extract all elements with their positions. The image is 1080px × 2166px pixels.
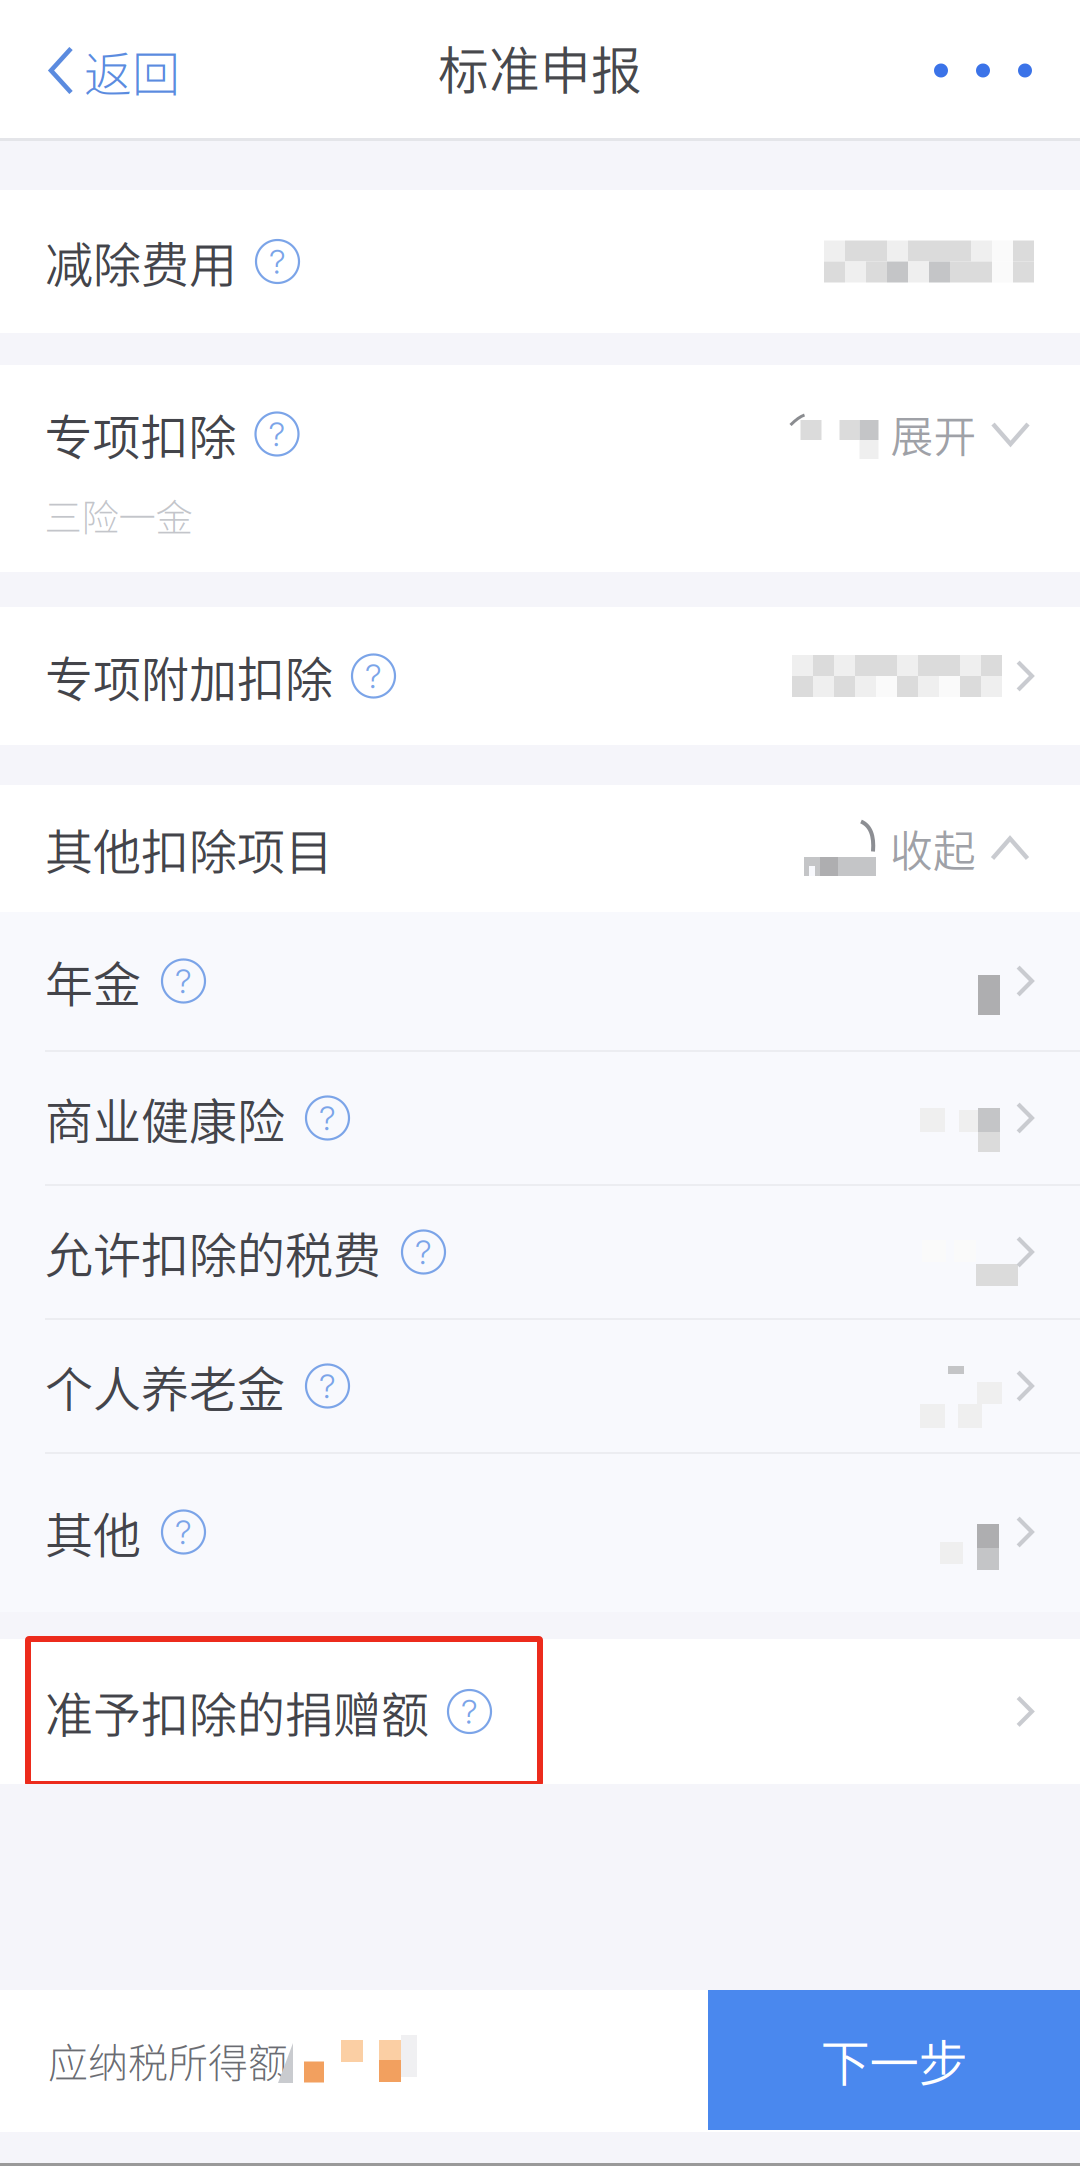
- staticText: 专项附加扣除: [45, 641, 333, 711]
- staticText: 准予扣除的捐赠额: [45, 1677, 429, 1746]
- staticText: 下一步: [820, 2024, 967, 2096]
- staticText: 返回: [84, 36, 180, 105]
- staticText: ?: [415, 1232, 432, 1272]
- staticText: ?: [319, 1098, 336, 1138]
- button[interactable]: 允许扣除的税费: [0, 1186, 1080, 1320]
- staticText: 其他: [45, 1497, 141, 1567]
- staticText: ?: [269, 241, 286, 282]
- button[interactable]: 其他扣除项目: [0, 785, 1080, 912]
- button[interactable]: 下一步: [708, 1990, 1080, 2130]
- staticText: 三险一金: [44, 488, 192, 543]
- button[interactable]: 商业健康险: [0, 1052, 1080, 1186]
- button[interactable]: 其他: [0, 1454, 1080, 1612]
- staticText: ?: [268, 414, 285, 454]
- staticText: ?: [175, 961, 192, 1001]
- button[interactable]: 个人养老金: [0, 1320, 1080, 1454]
- staticText: 应纳税所得额: [48, 2031, 288, 2089]
- staticText: 展开: [890, 403, 976, 465]
- staticText: 个人养老金: [45, 1351, 285, 1421]
- staticText: ?: [319, 1366, 336, 1406]
- button[interactable]: 专项附加扣除: [0, 607, 1080, 745]
- staticText: 专项扣除: [44, 399, 236, 469]
- button[interactable]: 准予扣除的捐赠额: [0, 1639, 1080, 1784]
- staticText: 减除费用: [45, 227, 237, 296]
- button[interactable]: 年金: [0, 912, 1080, 1052]
- button[interactable]: 减除费用: [0, 190, 1080, 333]
- button[interactable]: 专项扣除: [0, 365, 1080, 572]
- staticText: 允许扣除的税费: [45, 1217, 381, 1287]
- staticText: 收起: [890, 818, 976, 879]
- staticText: ?: [175, 1512, 192, 1552]
- staticText: 商业健康险: [45, 1083, 285, 1153]
- staticText: 标准申报: [438, 31, 642, 104]
- staticText: 其他扣除项目: [45, 814, 333, 883]
- staticText: ?: [461, 1691, 478, 1732]
- button[interactable]: 返回: [0, 1, 204, 140]
- staticText: 年金: [45, 946, 141, 1016]
- staticText: ?: [365, 656, 382, 696]
- button[interactable]: 更多: [898, 1, 1080, 140]
